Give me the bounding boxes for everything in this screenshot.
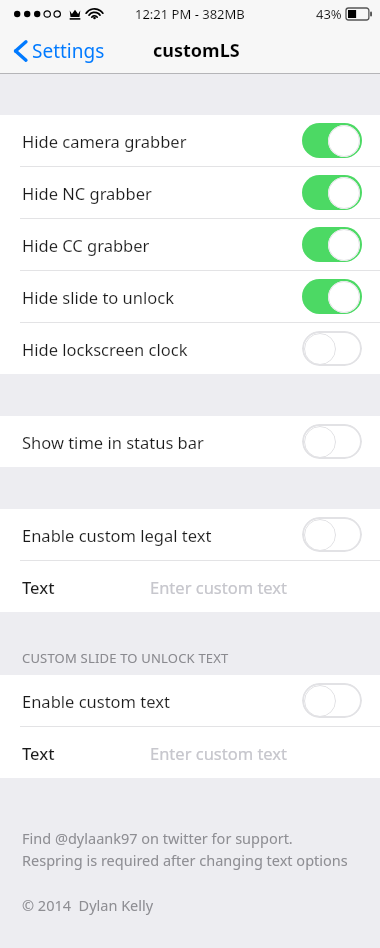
staticText: Enter custom text (150, 742, 288, 764)
button[interactable]: Hide camera grabber (0, 115, 380, 166)
staticText: © 2014 Dylan Kelly (22, 895, 154, 915)
staticText: Hide CC grabber (22, 234, 302, 256)
staticText: Respring is required after changing text… (22, 850, 348, 870)
button[interactable]: Hide CC grabber (0, 219, 380, 270)
button[interactable]: Enable custom text (0, 675, 380, 726)
staticText: 43% (316, 5, 342, 23)
staticText: Enable custom legal text (22, 524, 302, 546)
staticText: Find @dylaank97 on twitter for support. (22, 828, 293, 848)
staticText: Settings (32, 38, 105, 64)
staticText: Enter custom text (150, 576, 288, 598)
button[interactable]: Settings (10, 34, 109, 68)
staticText: Text (22, 576, 55, 598)
button[interactable]: Hide slide to unlock (0, 271, 380, 322)
button[interactable]: Toggle on (302, 175, 362, 210)
button[interactable]: Show time in status bar (0, 416, 380, 467)
staticText: Show time in status bar (22, 431, 302, 453)
button[interactable]: Text (0, 561, 380, 612)
staticText: CUSTOM SLIDE TO UNLOCK TEXT (22, 649, 229, 667)
staticText: Hide slide to unlock (22, 286, 302, 308)
staticText: Hide NC grabber (22, 182, 302, 204)
staticText: Hide camera grabber (22, 130, 302, 152)
staticText: Enable custom text (22, 690, 302, 712)
button[interactable]: Toggle off (302, 683, 362, 718)
button[interactable]: Toggle on (302, 279, 362, 314)
staticText: Hide lockscreen clock (22, 338, 302, 360)
button[interactable]: Toggle off (302, 517, 362, 552)
staticText: Text (22, 742, 55, 764)
button[interactable]: Enable custom legal text (0, 509, 380, 560)
button[interactable]: Toggle off (302, 331, 362, 366)
staticText: customLS (153, 38, 240, 63)
button[interactable]: Toggle on (302, 227, 362, 262)
staticText: 12:21 PM - 382MB (135, 5, 245, 23)
button[interactable]: Toggle on (302, 123, 362, 158)
button[interactable]: Hide lockscreen clock (0, 323, 380, 374)
button[interactable]: Text (0, 727, 380, 778)
button[interactable]: Toggle off (302, 424, 362, 459)
button[interactable]: Hide NC grabber (0, 167, 380, 218)
